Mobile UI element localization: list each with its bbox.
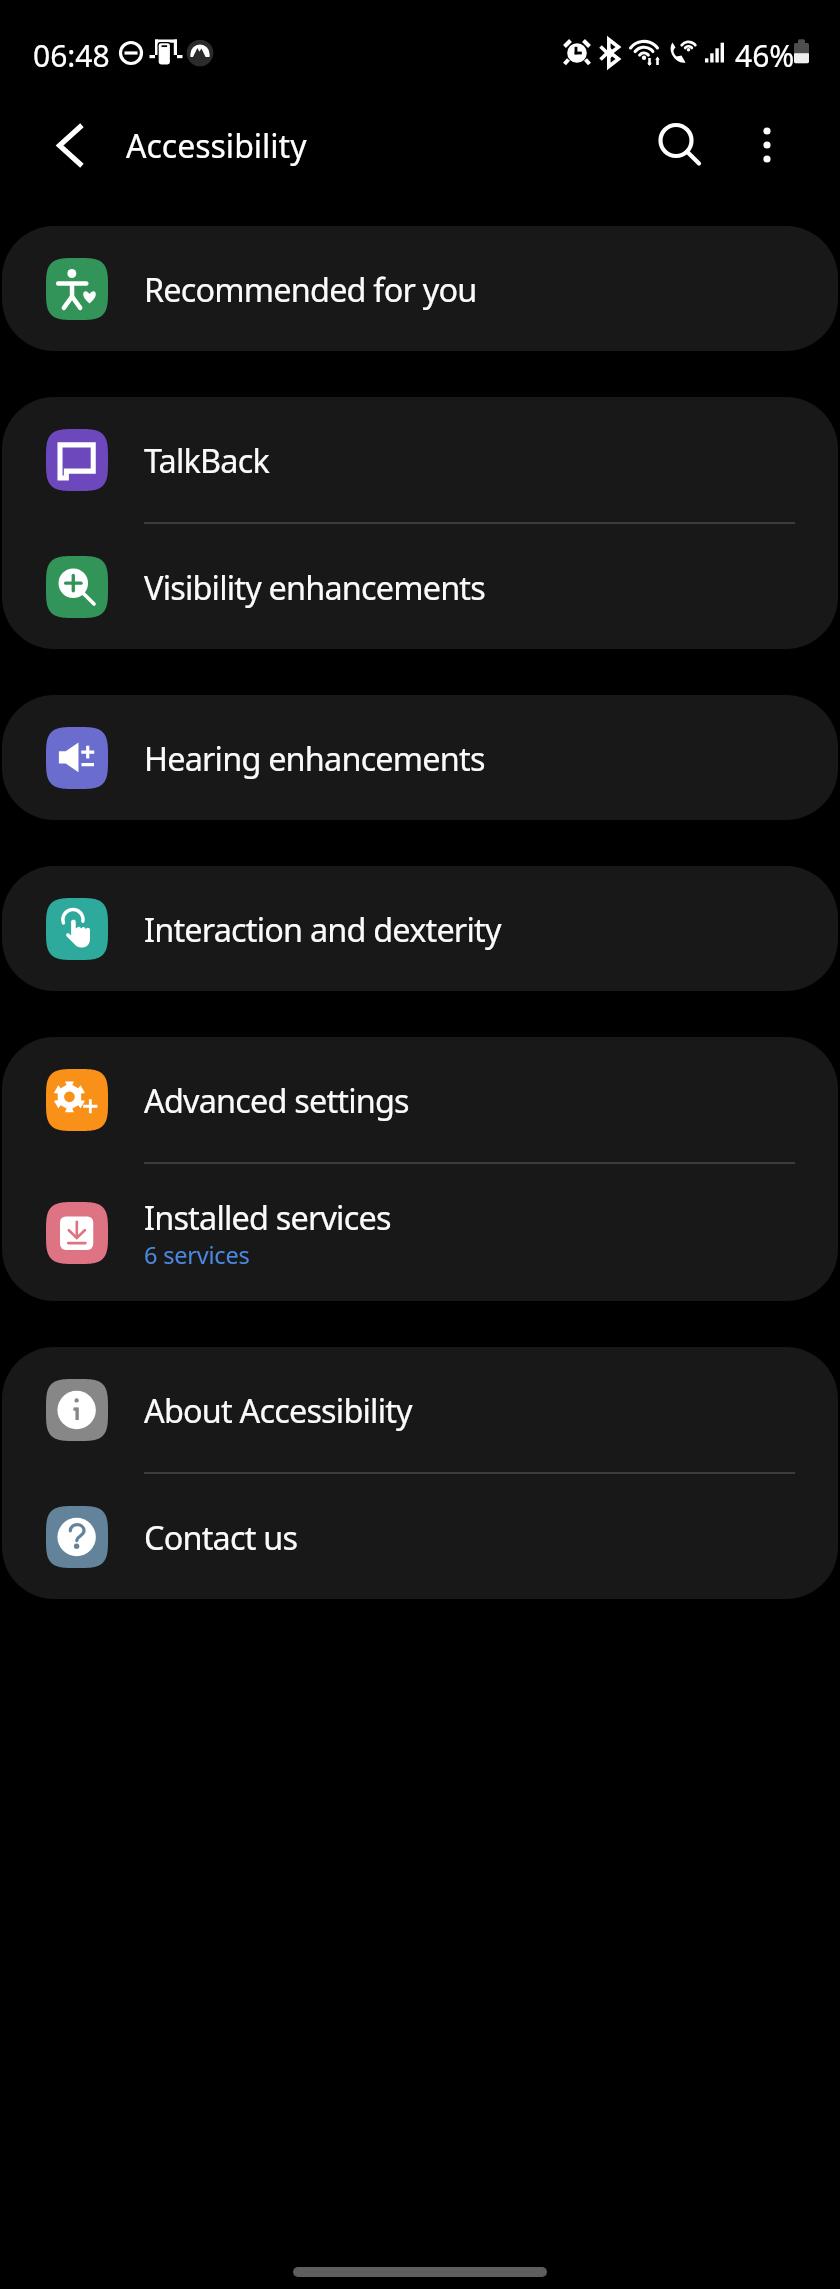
- button[interactable]: Recommended for you: [2, 226, 838, 351]
- button[interactable]: Navigate up: [26, 97, 114, 185]
- button[interactable]: Advanced settings: [2, 1037, 838, 1162]
- staticText: Interaction and dexterity: [144, 907, 501, 951]
- staticText: Visibility enhancements: [144, 565, 485, 609]
- button[interactable]: Contact us: [2, 1474, 838, 1599]
- staticText: TalkBack: [144, 438, 269, 482]
- staticText: 06:48: [33, 35, 110, 76]
- staticText: 46%: [735, 35, 795, 76]
- button[interactable]: About Accessibility: [2, 1347, 838, 1472]
- staticText: 6 services: [144, 1239, 250, 1271]
- staticText: Accessibility: [126, 124, 307, 168]
- staticText: About Accessibility: [144, 1388, 412, 1432]
- staticText: Recommended for you: [144, 267, 477, 311]
- button[interactable]: TalkBack: [2, 397, 838, 522]
- button[interactable]: Search: [632, 97, 720, 185]
- staticText: Hearing enhancements: [144, 736, 485, 780]
- staticText: Advanced settings: [144, 1078, 409, 1122]
- staticText: Installed services: [144, 1195, 391, 1239]
- button[interactable]: Installed services: [2, 1164, 838, 1301]
- button[interactable]: More options: [723, 97, 811, 185]
- button[interactable]: Visibility enhancements: [2, 524, 838, 649]
- button[interactable]: Interaction and dexterity: [2, 866, 838, 991]
- button[interactable]: Hearing enhancements: [2, 695, 838, 820]
- staticText: Contact us: [144, 1515, 298, 1559]
